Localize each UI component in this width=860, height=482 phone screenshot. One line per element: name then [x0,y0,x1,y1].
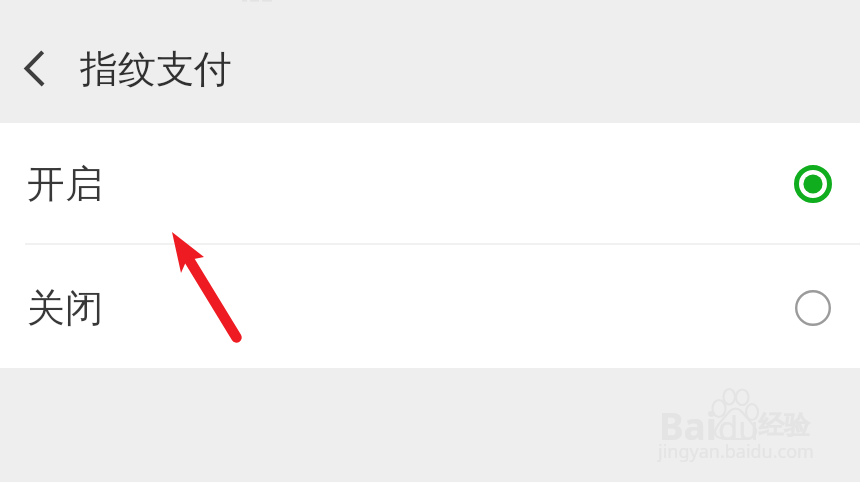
button[interactable]: 开启 [0,123,860,244]
staticText: 开启 [27,160,103,208]
staticText: 关闭 [27,284,103,332]
staticText: du [718,405,759,450]
staticText: Bai [659,400,717,450]
button[interactable]: 关闭 [0,245,860,367]
staticText: jingyan.baidu.com [658,439,814,464]
staticText: 经验 [758,409,810,442]
button[interactable]: Back [8,43,60,93]
staticText: 指纹支付 [80,45,232,93]
